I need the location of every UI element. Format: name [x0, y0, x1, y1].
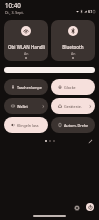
staticText: 10:40	[5, 1, 21, 9]
button[interactable]: Autom. Drehe	[51, 117, 95, 133]
staticText: Bluetooth	[62, 44, 84, 50]
staticText: Klingeln lass	[17, 123, 45, 128]
staticText: An	[24, 51, 29, 56]
staticText: 61	[88, 9, 93, 14]
button[interactable]: Obi WLAN Handli	[4, 20, 48, 61]
staticText: Glocke	[64, 85, 92, 90]
button[interactable]: Einstellungen	[72, 203, 82, 213]
button[interactable]: Wallet	[4, 98, 48, 114]
button[interactable]: Bluetooth	[51, 20, 95, 61]
button[interactable]: Helligkeit	[4, 67, 95, 73]
button[interactable]: Taschenlampe	[4, 79, 48, 95]
staticText: Geräteste.	[64, 104, 89, 109]
staticText: Wallet	[17, 104, 42, 109]
button[interactable]: Ein/Aus	[86, 203, 94, 211]
staticText: Taschenlampe	[17, 85, 45, 90]
button[interactable]: Klingeln lass	[4, 117, 48, 133]
button[interactable]: Geräteste.	[51, 98, 95, 114]
staticText: Obi WLAN Handli	[8, 44, 45, 50]
staticText: Di., 3. Sept.	[5, 10, 24, 15]
staticText: An	[71, 51, 76, 56]
button[interactable]: Bearbeiten	[85, 136, 95, 146]
staticText: Autom. Drehe	[64, 123, 92, 128]
button[interactable]: Glocke	[51, 79, 95, 95]
